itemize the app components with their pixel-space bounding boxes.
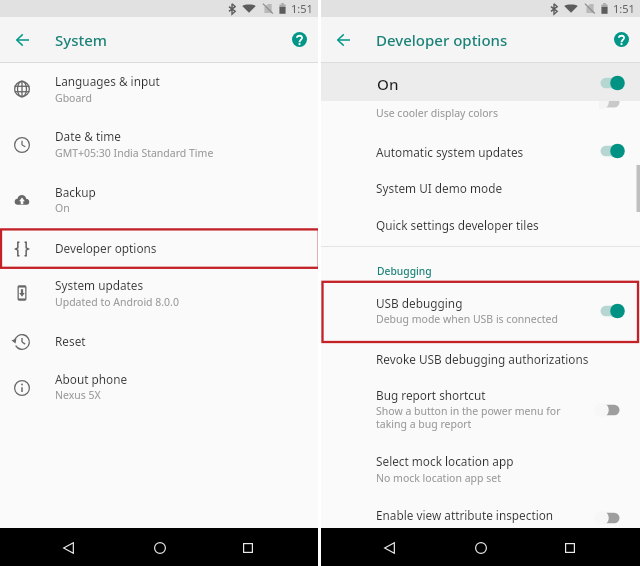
staticText: No mock location app set (376, 471, 501, 485)
staticText: Nexus 5X (55, 388, 101, 402)
button[interactable]: Back (56, 535, 81, 560)
button[interactable] (321, 137, 640, 174)
staticText: Reset (55, 333, 86, 349)
staticText: USB debugging (376, 295, 463, 311)
button[interactable]: Recent apps (557, 535, 582, 560)
staticText: On (55, 201, 70, 215)
button[interactable] (321, 211, 640, 248)
staticText: Developer options (376, 30, 508, 50)
button[interactable]: Back (377, 535, 402, 560)
button[interactable] (0, 324, 318, 361)
staticText: Updated to Android 8.0.0 (55, 295, 179, 309)
button[interactable]: Navigate up (331, 28, 355, 52)
staticText: Developer options (55, 240, 157, 256)
button[interactable]: Home (468, 535, 493, 560)
staticText: Debug mode when USB is connected (376, 312, 558, 326)
staticText: About phone (55, 371, 128, 387)
staticText: Backup (55, 184, 96, 200)
button[interactable] (321, 381, 640, 436)
button[interactable] (0, 361, 318, 416)
button[interactable] (0, 266, 318, 321)
staticText: Select mock location app (376, 453, 514, 469)
staticText: 1:51 (613, 1, 635, 16)
staticText: System UI demo mode (376, 180, 503, 196)
button[interactable]: Help (287, 27, 311, 51)
button[interactable] (0, 173, 318, 228)
button[interactable] (321, 285, 640, 333)
button[interactable]: Home (147, 535, 172, 560)
staticText: Show a button in the power menu for taki… (376, 404, 561, 432)
button[interactable]: Recent apps (235, 535, 260, 560)
button[interactable] (321, 174, 640, 211)
button[interactable]: Navigate up (10, 28, 34, 52)
staticText: Languages & input (55, 73, 160, 89)
staticText: Quick settings developer tiles (376, 217, 539, 233)
staticText: Use cooler display colors (376, 106, 498, 120)
staticText: System updates (55, 277, 144, 293)
staticText: Revoke USB debugging authorizations (376, 351, 589, 367)
staticText: Enable view attribute inspection (376, 507, 554, 523)
staticText: Date & time (55, 128, 121, 144)
button[interactable] (321, 63, 640, 101)
button[interactable] (0, 231, 318, 268)
staticText: Gboard (55, 91, 92, 105)
staticText: Automatic system updates (376, 144, 524, 160)
staticText: Debugging (377, 264, 432, 278)
button[interactable] (0, 62, 318, 117)
button[interactable] (0, 118, 318, 173)
button[interactable] (321, 447, 640, 495)
staticText: 1:51 (291, 1, 313, 16)
button[interactable]: Help (609, 27, 633, 51)
staticText: GMT+05:30 India Standard Time (55, 146, 214, 160)
button[interactable] (321, 101, 640, 127)
staticText: On (377, 74, 399, 95)
staticText: Bug report shortcut (376, 387, 486, 403)
staticText: System (55, 30, 108, 50)
button[interactable] (321, 501, 640, 538)
button[interactable] (321, 345, 640, 382)
